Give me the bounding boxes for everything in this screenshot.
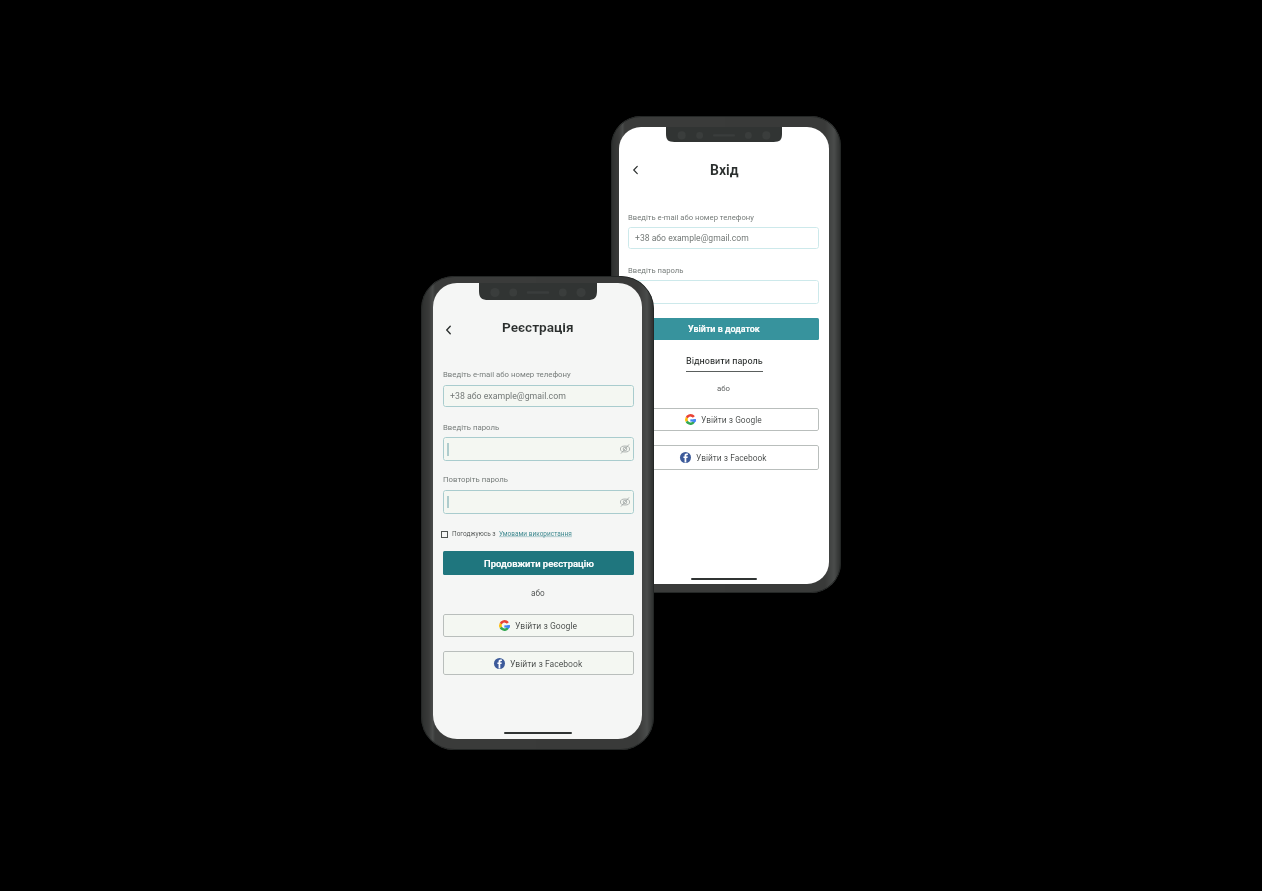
button[interactable]: Увійти з Google [443, 614, 634, 637]
button[interactable]: +38 або example@gmail.com [443, 385, 634, 407]
button[interactable]: Увійти з Google [628, 408, 819, 431]
button[interactable]: Увійти з Facebook [443, 651, 634, 675]
staticText: Увійти з Facebook [696, 453, 767, 463]
staticText: або [717, 384, 731, 393]
button[interactable]: Увійти з Facebook [628, 445, 819, 470]
button[interactable] [628, 280, 819, 304]
button[interactable]: Увійти в додаток [628, 318, 819, 340]
button[interactable]: Продовжити реєстрацію [443, 551, 634, 575]
staticText: Погоджуюсь з [452, 530, 496, 538]
staticText: Введіть e-mail або номер телефону [443, 370, 571, 379]
staticText: Умовами використання [499, 530, 572, 538]
button[interactable]: Back [442, 322, 455, 338]
staticText: або [531, 588, 545, 598]
staticText: Увійти з Google [515, 621, 578, 631]
staticText: +38 або example@gmail.com [635, 233, 749, 243]
button[interactable]: Погоджуюсь з [441, 530, 572, 538]
button[interactable]: Back [629, 162, 641, 177]
staticText: Відновити пароль [686, 356, 763, 367]
staticText: Увійти з Facebook [510, 659, 583, 669]
staticText: Введіть пароль [443, 423, 500, 432]
staticText: Повторіть пароль [443, 475, 508, 484]
button[interactable] [443, 437, 634, 461]
staticText: Вхід [710, 162, 739, 178]
staticText: +38 або example@gmail.com [450, 391, 566, 401]
button[interactable]: Відновити пароль [686, 356, 763, 367]
staticText: Увійти з Google [701, 415, 762, 425]
staticText: Реєстрація [502, 319, 574, 335]
button[interactable] [443, 490, 634, 514]
staticText: Введіть пароль [628, 266, 684, 275]
staticText: Продовжити реєстрацію [484, 558, 594, 569]
button[interactable]: +38 або example@gmail.com [628, 227, 819, 249]
staticText: Введіть e-mail або номер телефону [628, 213, 754, 222]
staticText: Увійти в додаток [688, 324, 760, 334]
